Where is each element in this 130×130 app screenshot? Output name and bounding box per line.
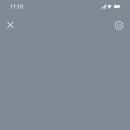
button[interactable]: Close	[0, 15, 20, 35]
button[interactable]: Settings	[109, 15, 129, 35]
staticText: 11:10	[10, 3, 23, 10]
